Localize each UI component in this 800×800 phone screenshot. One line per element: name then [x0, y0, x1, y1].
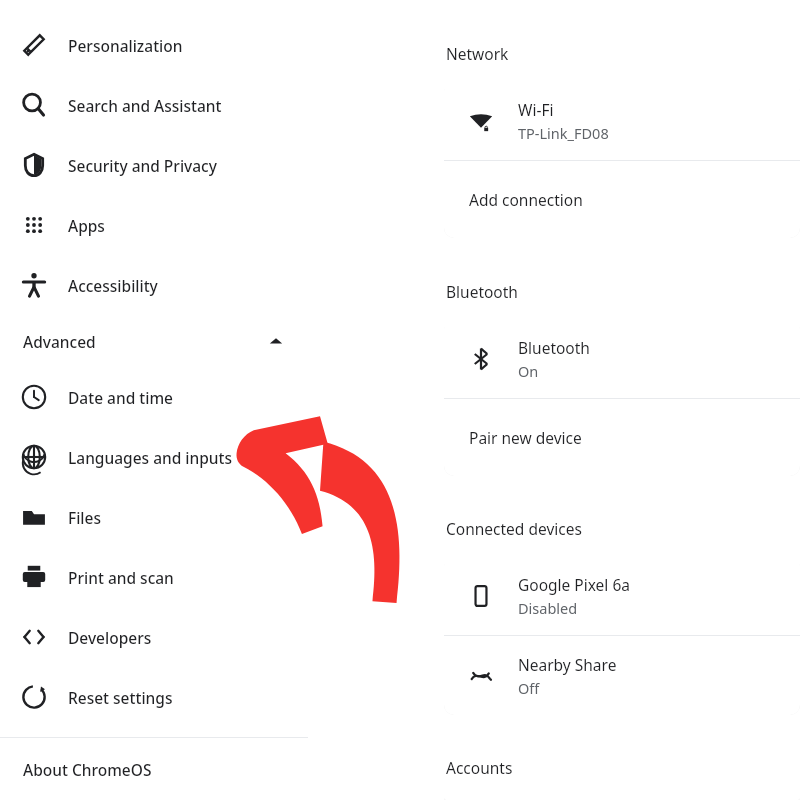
staticText: Disabled [518, 598, 578, 618]
staticText: Apps [68, 215, 105, 236]
button[interactable]: Apps [0, 195, 308, 255]
button[interactable]: Personalization [0, 15, 308, 75]
button[interactable]: Languages and inputs [0, 427, 308, 487]
button[interactable]: Accessibility [0, 255, 308, 315]
button[interactable]: Google Pixel 6a [444, 556, 800, 635]
button[interactable]: Wi-Fi settings [444, 81, 800, 160]
staticText: Network [446, 43, 509, 64]
button[interactable]: Security and Privacy [0, 135, 308, 195]
button[interactable]: Print and scan [0, 547, 308, 607]
staticText: Security and Privacy [68, 155, 217, 176]
staticText: Connected devices [446, 518, 582, 539]
staticText: Wi-Fi [518, 99, 554, 120]
button[interactable]: Nearby Share [444, 636, 800, 715]
staticText: Languages and inputs [68, 447, 233, 468]
staticText: On [518, 361, 539, 381]
staticText: Accessibility [68, 275, 158, 296]
button[interactable]: About ChromeOS [0, 738, 308, 800]
staticText: Nearby Share [518, 654, 617, 675]
button[interactable]: Developers [0, 607, 308, 667]
staticText: Developers [68, 627, 152, 648]
button[interactable]: Bluetooth settings [444, 319, 800, 398]
staticText: Reset settings [68, 687, 173, 708]
staticText: Pair new device [469, 427, 582, 448]
staticText: Print and scan [68, 567, 174, 588]
staticText: Bluetooth [518, 337, 590, 358]
staticText: About ChromeOS [23, 759, 152, 780]
button[interactable]: Pair new device [444, 399, 800, 476]
staticText: Bluetooth [446, 281, 518, 302]
staticText: Search and Assistant [68, 95, 222, 116]
button[interactable]: Advanced [0, 315, 308, 367]
button[interactable]: Reset settings [0, 667, 308, 727]
staticText: Files [68, 507, 101, 528]
staticText: Google Pixel 6a [518, 574, 630, 595]
staticText: Off [518, 678, 540, 698]
staticText: Accounts [446, 757, 513, 778]
staticText: Add connection [469, 189, 583, 210]
staticText: Advanced [23, 331, 96, 352]
button[interactable]: Search and Assistant [0, 75, 308, 135]
button[interactable]: Add connection [444, 161, 800, 238]
button[interactable]: Files [0, 487, 308, 547]
staticText: TP-Link_FD08 [518, 123, 609, 143]
button[interactable]: Date and time [0, 367, 308, 427]
staticText: Personalization [68, 35, 183, 56]
staticText: Date and time [68, 387, 173, 408]
